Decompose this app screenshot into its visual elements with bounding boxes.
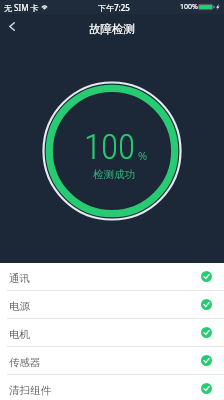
staticText: 下午7:25 [98,2,130,13]
staticText: 电源 [9,300,30,313]
button[interactable]: 电源 [0,291,224,319]
staticText: 无 SIM 卡 [4,2,39,13]
staticText: 清扫组件 [9,384,51,397]
staticText: 检测成功 [93,168,135,181]
button[interactable]: 传感器 [0,347,224,375]
button[interactable]: Back [0,14,26,40]
staticText: 100 [84,127,136,168]
staticText: 100% [180,2,198,12]
button[interactable]: 电机 [0,319,224,347]
staticText: 传感器 [9,356,41,369]
staticText: % [138,148,148,163]
staticText: 电机 [9,328,30,341]
button[interactable]: 清扫组件 [0,375,224,400]
button[interactable]: 通讯 [0,263,224,291]
staticText: 故障检测 [89,22,135,36]
staticText: 通讯 [9,272,30,285]
